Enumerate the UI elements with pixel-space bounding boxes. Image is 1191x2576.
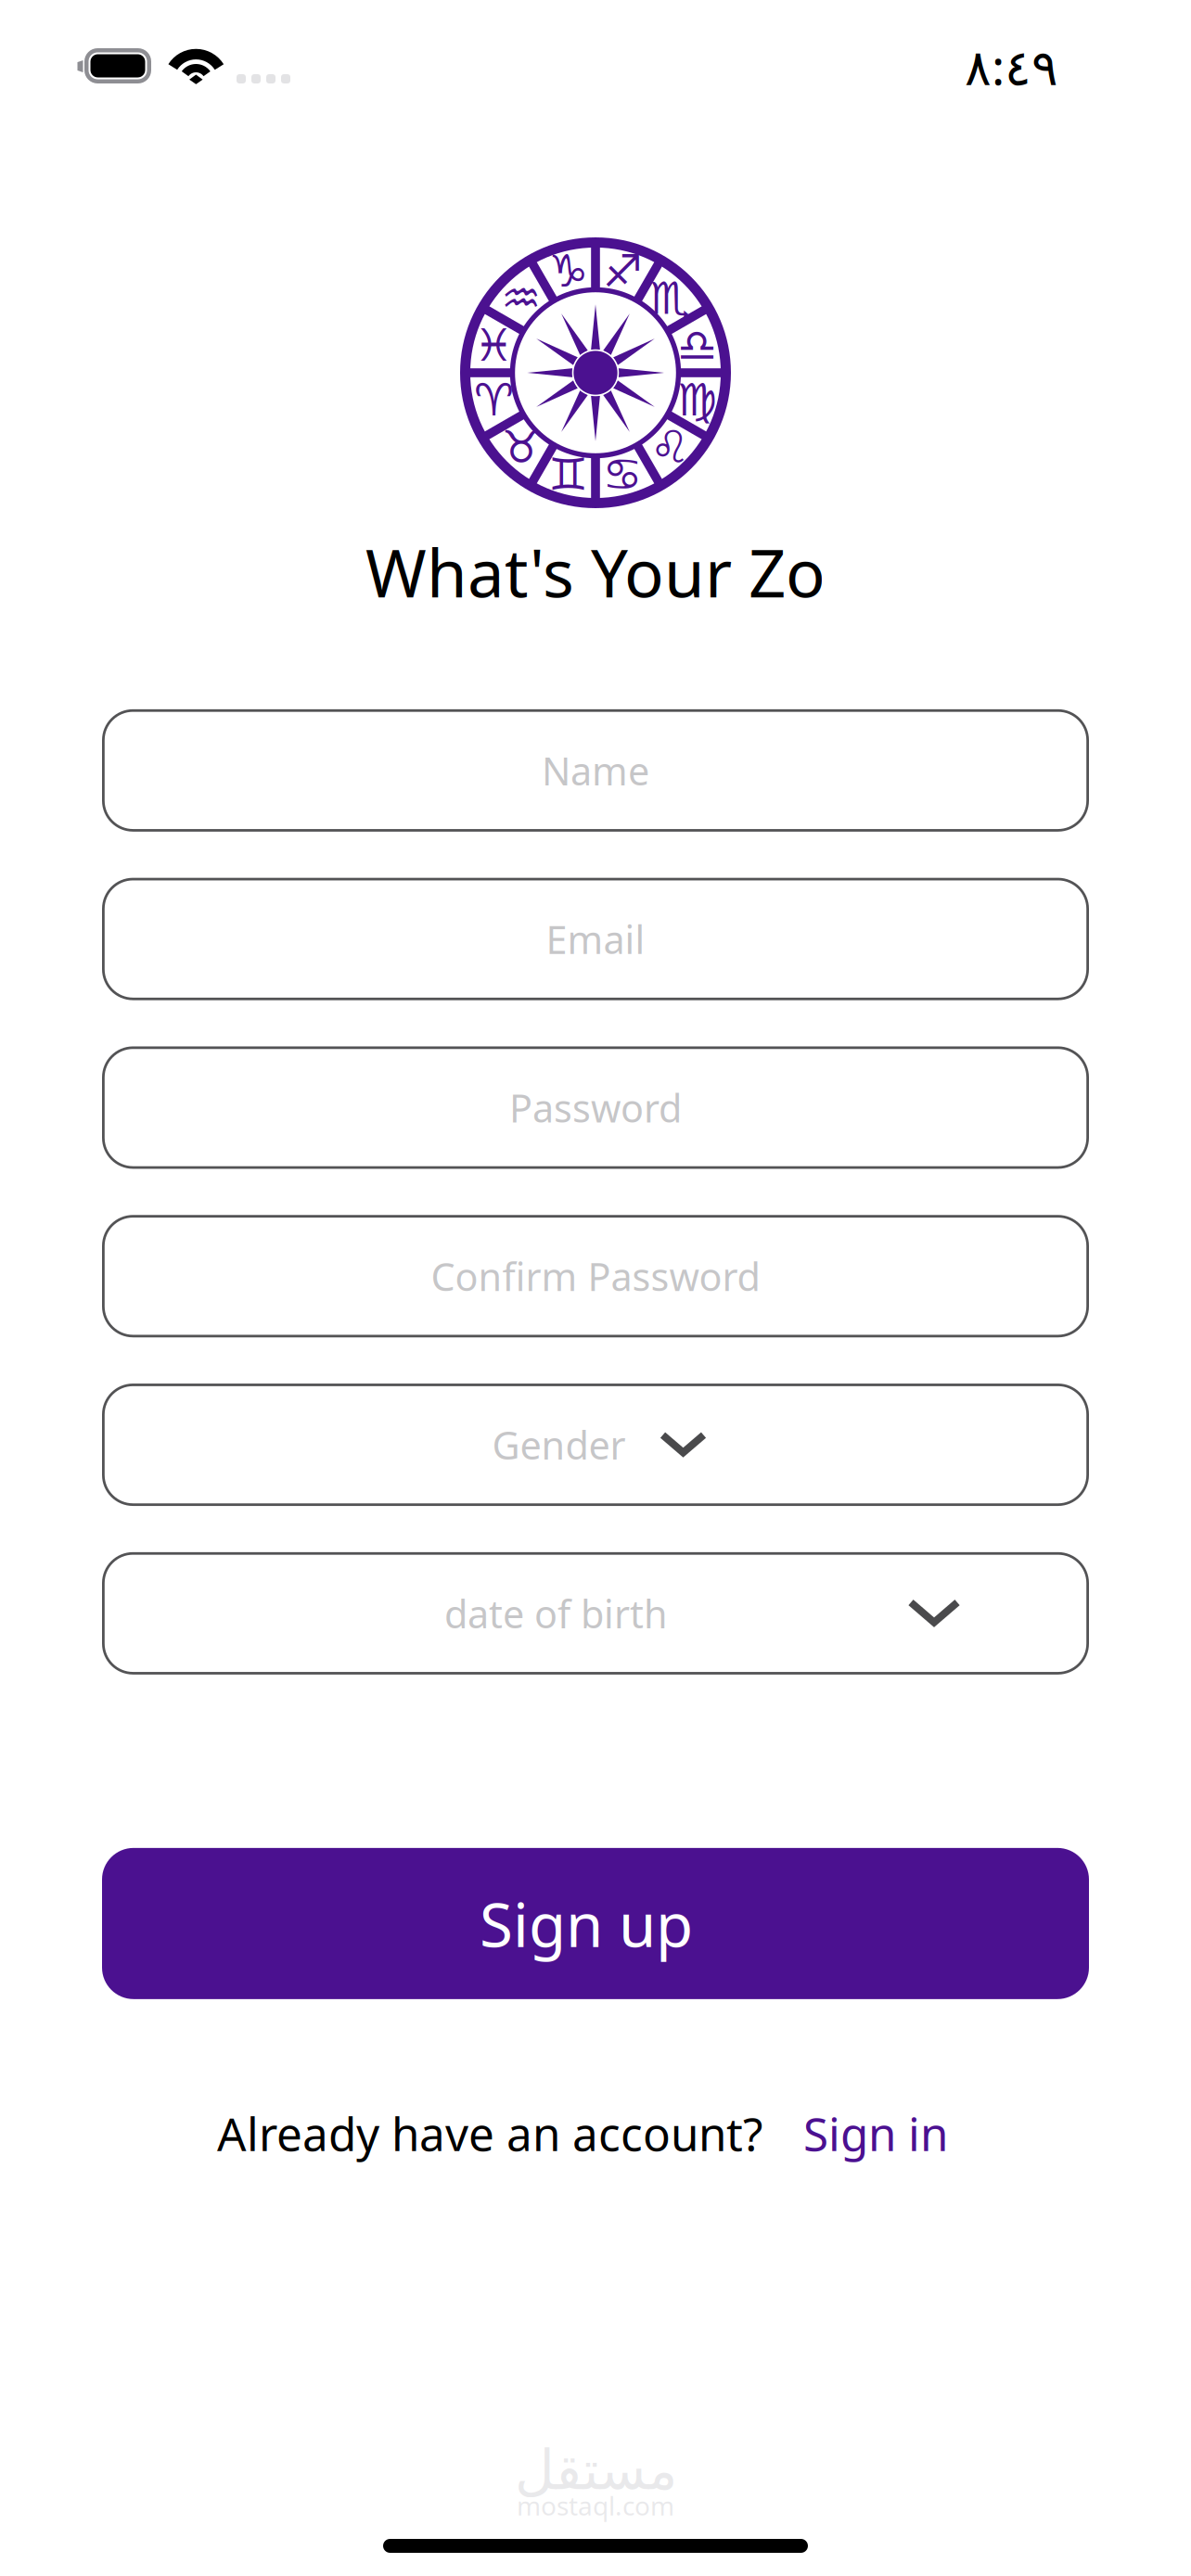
button[interactable]: Password xyxy=(102,1046,1089,1169)
staticText: Confirm Password xyxy=(431,1251,760,1302)
staticText: ٨:٤٩ xyxy=(965,33,1058,99)
staticText: Sign in xyxy=(803,2103,948,2164)
staticText: ♎︎ xyxy=(677,320,717,371)
button[interactable]: Confirm Password xyxy=(102,1215,1089,1337)
staticText: ♍︎ xyxy=(677,375,717,425)
button[interactable]: Sign up xyxy=(102,1848,1089,1999)
staticText: date of birth xyxy=(444,1588,668,1639)
staticText: ♒︎ xyxy=(501,273,541,324)
staticText: Gender xyxy=(492,1419,626,1470)
staticText: ♌︎ xyxy=(650,422,690,472)
staticText: ♊︎ xyxy=(548,449,588,500)
button[interactable]: Sign in xyxy=(803,2103,948,2164)
staticText: Password xyxy=(509,1082,682,1133)
staticText: mostaql.com xyxy=(517,2488,674,2523)
button[interactable]: date of birth xyxy=(102,1552,1089,1674)
staticText: Email xyxy=(546,914,645,964)
button[interactable]: Email xyxy=(102,878,1089,1000)
staticText: ♈︎ xyxy=(474,375,514,425)
staticText: Sign up xyxy=(480,1883,693,1964)
staticText: ♉︎ xyxy=(501,422,541,472)
staticText: Name xyxy=(542,745,649,796)
button[interactable]: Name xyxy=(102,709,1089,832)
staticText: Already have an account? xyxy=(217,2103,762,2164)
staticText: ♐︎ xyxy=(603,246,643,296)
staticText: ♏︎ xyxy=(650,273,690,324)
staticText: مستقل xyxy=(514,2439,677,2501)
staticText: ♓︎ xyxy=(474,320,514,371)
staticText: What's Your Zo xyxy=(365,529,826,616)
staticText: ♋︎ xyxy=(603,449,643,500)
button[interactable]: Gender xyxy=(102,1384,1089,1506)
staticText: ♑︎ xyxy=(548,246,588,296)
